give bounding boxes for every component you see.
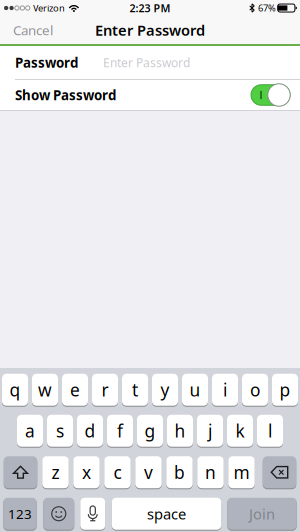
button[interactable]: Cancel — [0, 21, 53, 39]
staticText: 123 — [8, 505, 32, 523]
button[interactable]: s — [47, 414, 73, 447]
button[interactable]: h — [167, 414, 193, 447]
staticText: r — [101, 378, 108, 401]
button[interactable]: i — [212, 373, 238, 406]
button[interactable]: o — [242, 373, 268, 406]
button[interactable]: e — [62, 373, 88, 406]
button[interactable] — [4, 456, 37, 489]
button[interactable]: d — [77, 414, 103, 447]
staticText: g — [144, 419, 155, 442]
button[interactable]: a — [17, 414, 43, 447]
button[interactable]: g — [137, 414, 163, 447]
staticText: i — [223, 378, 227, 401]
staticText: z — [51, 461, 59, 484]
button[interactable]: space — [112, 497, 221, 530]
button[interactable]: m — [228, 456, 255, 489]
button[interactable]: u — [182, 373, 208, 406]
staticText: m — [233, 461, 249, 484]
staticText: n — [205, 461, 216, 484]
button[interactable]: l — [257, 414, 283, 447]
staticText: c — [113, 461, 121, 484]
staticText: e — [70, 378, 80, 401]
staticText: x — [82, 461, 91, 484]
button[interactable]: z — [42, 456, 69, 489]
button[interactable]: Password — [0, 46, 300, 79]
button[interactable]: c — [104, 456, 131, 489]
button[interactable]: w — [32, 373, 58, 406]
staticText: Enter Password — [95, 20, 205, 40]
staticText: b — [174, 461, 185, 484]
staticText: y — [160, 378, 169, 401]
staticText: Join — [249, 504, 275, 523]
staticText: t — [132, 378, 138, 401]
button[interactable] — [80, 497, 105, 530]
staticText: Verizon — [33, 2, 65, 14]
staticText: Show Password — [15, 86, 116, 104]
button[interactable]: q — [2, 373, 28, 406]
staticText: h — [174, 419, 185, 442]
staticText: Enter Password — [103, 54, 190, 70]
staticText: u — [189, 378, 200, 401]
staticText: f — [117, 419, 123, 442]
button[interactable]: k — [227, 414, 253, 447]
staticText: j — [208, 419, 212, 442]
staticText: Cancel — [13, 21, 53, 39]
button[interactable]: p — [272, 373, 298, 406]
button[interactable]: 123 — [3, 497, 37, 530]
staticText: 67% — [258, 2, 276, 14]
staticText: w — [38, 378, 52, 401]
button[interactable]: y — [152, 373, 178, 406]
staticText: d — [84, 419, 95, 442]
staticText: k — [235, 419, 244, 442]
button[interactable]: f — [107, 414, 133, 447]
button[interactable]: t — [122, 373, 148, 406]
button[interactable]: v — [135, 456, 162, 489]
staticText: p — [279, 378, 290, 401]
button[interactable]: r — [92, 373, 118, 406]
staticText: v — [144, 461, 153, 484]
button[interactable] — [43, 497, 74, 530]
button[interactable] — [263, 456, 296, 489]
staticText: space — [147, 504, 186, 523]
staticText: q — [9, 378, 20, 401]
button[interactable]: Join — [227, 497, 297, 530]
staticText: 2:23 PM — [129, 1, 170, 15]
button[interactable] — [250, 83, 291, 107]
staticText: Password — [15, 54, 78, 71]
staticText: a — [25, 419, 35, 442]
staticText: o — [250, 378, 260, 401]
button[interactable]: x — [73, 456, 100, 489]
button[interactable]: n — [197, 456, 224, 489]
staticText: s — [56, 419, 64, 442]
staticText: l — [268, 419, 272, 442]
button[interactable]: b — [166, 456, 193, 489]
button[interactable]: j — [197, 414, 223, 447]
